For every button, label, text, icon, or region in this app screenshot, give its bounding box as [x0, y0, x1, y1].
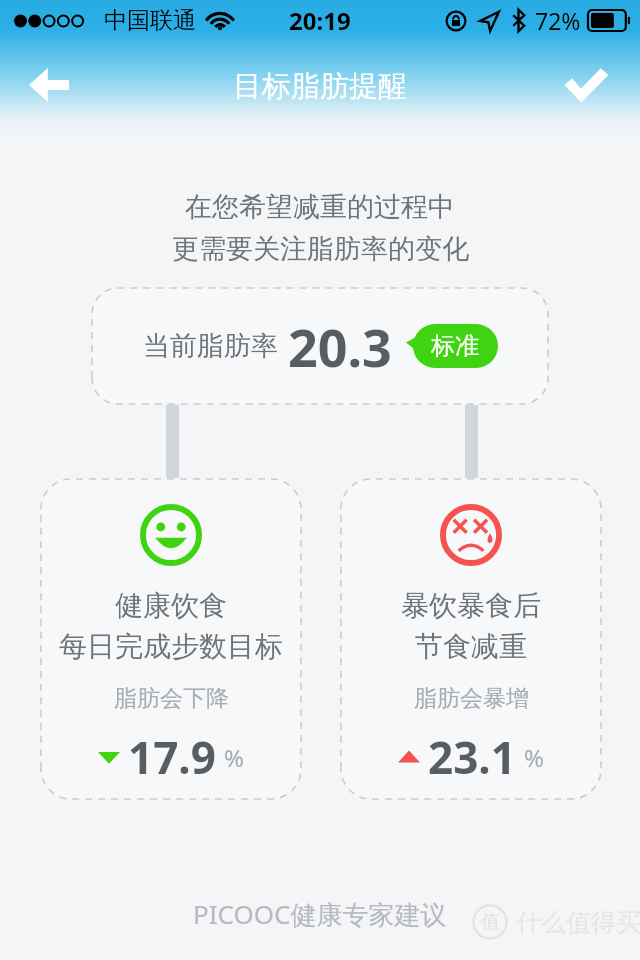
staticText: 标准	[431, 331, 479, 361]
staticText: 健康饮食	[115, 588, 227, 623]
staticText: PICOOC健康专家建议	[193, 896, 447, 932]
button[interactable]: Confirm	[548, 48, 624, 122]
staticText: 节食减重	[415, 629, 527, 664]
button[interactable]: Back	[12, 48, 86, 122]
staticText: 值	[481, 910, 500, 934]
staticText: 17.9	[128, 727, 216, 787]
button[interactable]: 健康饮食	[40, 478, 302, 800]
staticText: 每日完成步数目标	[59, 629, 283, 664]
staticText: 目标脂肪提醒	[233, 68, 407, 105]
staticText: 在您希望减重的过程中	[185, 190, 455, 224]
staticText: 20:19	[289, 4, 351, 37]
staticText: 暴饮暴食后	[401, 588, 541, 623]
staticText: %	[524, 741, 544, 774]
button[interactable]: 当前脂肪率	[91, 287, 549, 405]
staticText: 20.3	[288, 311, 392, 382]
staticText: 什么值得买	[516, 907, 640, 938]
staticText: 脂肪会暴增	[414, 684, 529, 713]
staticText: 72%	[535, 5, 581, 36]
button[interactable]: 暴饮暴食后	[340, 478, 602, 800]
staticText: 中国联通	[104, 6, 196, 35]
staticText: 23.1	[428, 727, 516, 787]
staticText: 当前脂肪率	[143, 329, 278, 363]
staticText: 脂肪会下降	[114, 684, 229, 713]
staticText: 更需要关注脂肪率的变化	[172, 232, 469, 266]
staticText: %	[224, 741, 244, 774]
